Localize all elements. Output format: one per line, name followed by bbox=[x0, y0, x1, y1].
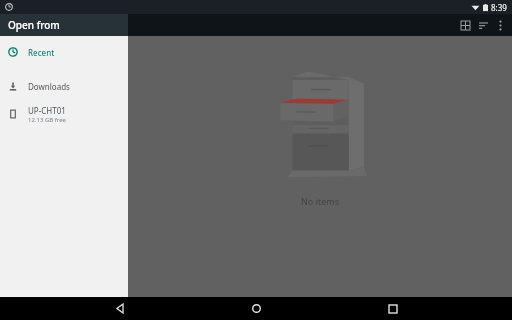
button[interactable]: Home bbox=[239, 297, 273, 320]
staticText: Downloads bbox=[28, 81, 70, 92]
button[interactable]: Recent apps bbox=[376, 297, 410, 320]
button[interactable]: Sort bbox=[474, 16, 492, 34]
button[interactable]: Downloads bbox=[0, 76, 128, 96]
staticText: 8:39 bbox=[491, 2, 507, 13]
button[interactable]: Back bbox=[103, 297, 137, 320]
staticText: UP-CHT01 bbox=[28, 105, 66, 116]
button[interactable]: UP-CHT01 bbox=[0, 102, 128, 126]
staticText: Open from bbox=[8, 18, 60, 32]
staticText: 12.13 GB free bbox=[28, 116, 66, 124]
button[interactable]: More options bbox=[492, 17, 508, 33]
button[interactable]: Grid view bbox=[456, 16, 474, 34]
button[interactable]: Recent bbox=[0, 42, 128, 62]
staticText: Recent bbox=[28, 47, 55, 58]
staticText: No items bbox=[301, 195, 339, 207]
